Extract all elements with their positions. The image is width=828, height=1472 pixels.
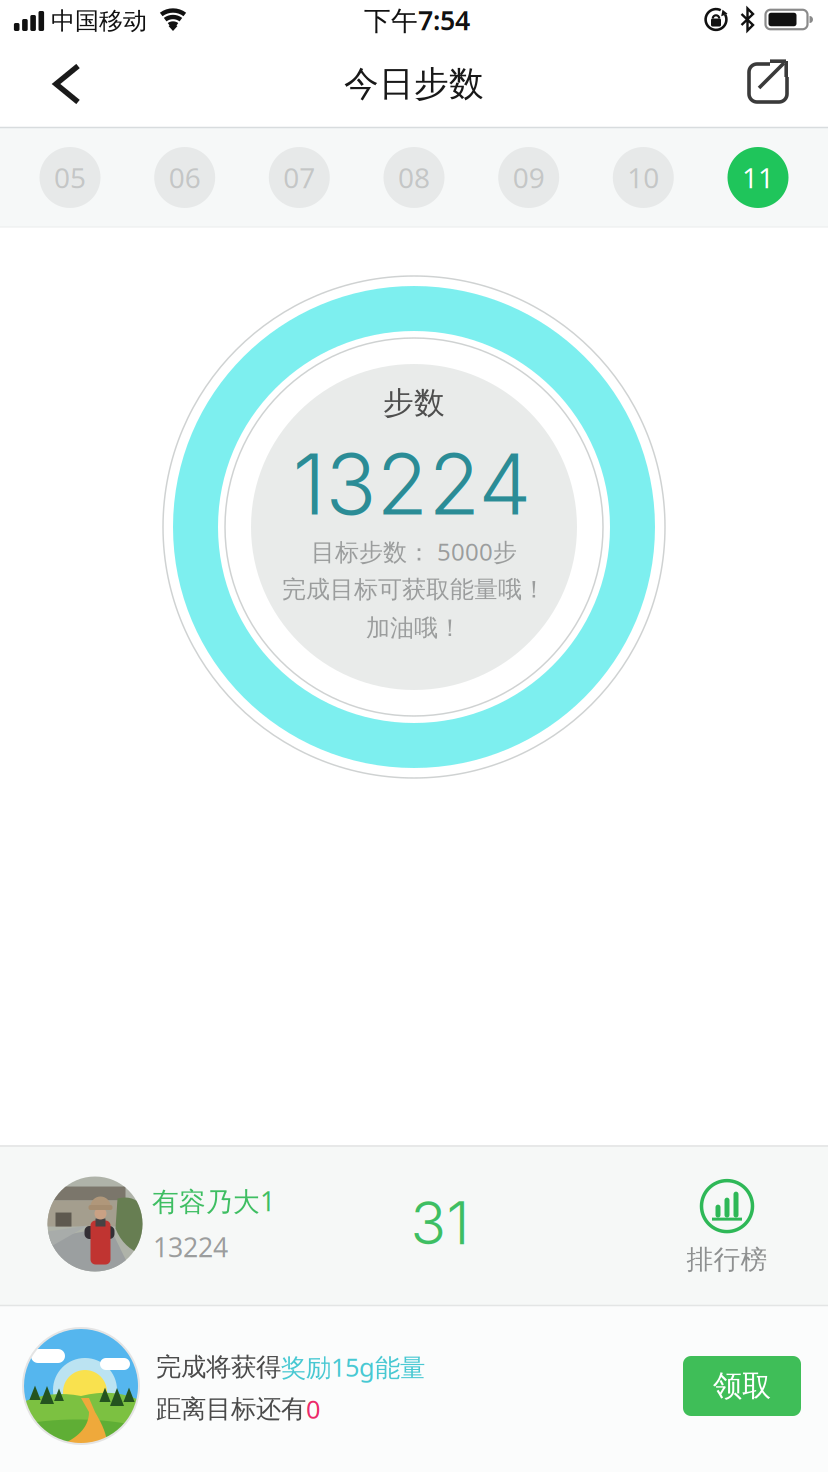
button[interactable]: 排行榜 [652, 1172, 802, 1284]
staticText: 中国移动 [51, 6, 147, 36]
button[interactable]: 领取 [683, 1356, 801, 1416]
button[interactable]: 06 [154, 147, 215, 208]
button[interactable]: 11 [727, 147, 788, 208]
staticText: 今日步数 [344, 63, 484, 105]
button[interactable]: 07 [269, 147, 330, 208]
button[interactable]: 08 [383, 147, 444, 208]
staticText: 08 [398, 159, 430, 196]
staticText: 奖励15g能量 [281, 1350, 425, 1384]
staticText: 步数 [383, 384, 445, 422]
staticText: 目标步数： 5000步 [311, 536, 517, 567]
staticText: 09 [513, 159, 545, 196]
staticText: 06 [169, 159, 201, 196]
staticText: 距离目标还有 [156, 1393, 306, 1424]
staticText: 10 [627, 159, 659, 196]
staticText: 加油哦！ [366, 613, 462, 643]
staticText: 07 [283, 159, 315, 196]
staticText: 完成目标可获取能量哦！ [282, 575, 546, 604]
staticText: 0 [306, 1392, 320, 1426]
staticText: 完成将获得 [156, 1351, 281, 1382]
button[interactable]: 10 [613, 147, 674, 208]
staticText: 31 [410, 1188, 469, 1258]
staticText: 有容乃大1 [152, 1183, 275, 1219]
staticText: 13224 [153, 1229, 228, 1265]
staticText: 领取 [713, 1368, 771, 1404]
button[interactable] [49, 62, 85, 106]
button[interactable] [744, 59, 792, 107]
staticText: 排行榜 [686, 1243, 767, 1276]
staticText: 13224 [292, 434, 531, 534]
staticText: 05 [54, 159, 86, 196]
staticText: 11 [742, 159, 774, 196]
button[interactable]: 09 [498, 147, 559, 208]
staticText: 下午7:54 [364, 2, 470, 38]
button[interactable]: 05 [39, 147, 100, 208]
